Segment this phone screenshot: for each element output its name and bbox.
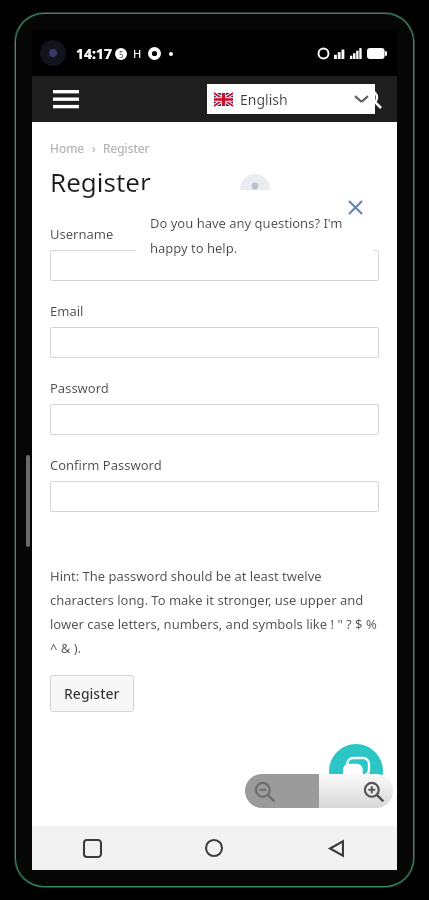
- button[interactable]: Open chat: [329, 744, 383, 798]
- staticText: Do you have any questions? I'm happy to …: [150, 214, 360, 257]
- staticText: H: [133, 46, 142, 61]
- button[interactable]: English: [207, 84, 375, 114]
- staticText: 14:17: [76, 44, 112, 63]
- staticText: Register: [50, 164, 151, 199]
- staticText: Email: [50, 302, 84, 320]
- button[interactable]: [50, 327, 379, 358]
- button[interactable]: [50, 481, 379, 512]
- staticText: Register: [64, 684, 120, 703]
- button[interactable]: Search: [353, 80, 391, 118]
- button[interactable]: [50, 404, 379, 435]
- staticText: ›: [92, 140, 96, 156]
- button[interactable]: Zoom in: [319, 774, 393, 808]
- staticText: Hint: The password should be at least tw…: [50, 567, 379, 657]
- staticText: Register: [103, 140, 150, 156]
- button[interactable]: Recents: [32, 826, 153, 870]
- staticText: Username: [50, 225, 114, 243]
- staticText: Password: [50, 379, 109, 397]
- staticText: Confirm Password: [50, 456, 162, 474]
- staticText: English: [240, 90, 288, 109]
- button[interactable]: Home: [50, 140, 85, 156]
- staticText: 5: [119, 49, 124, 60]
- button[interactable]: Menu: [46, 79, 86, 119]
- button[interactable]: [50, 250, 379, 281]
- button[interactable]: Close: [342, 194, 368, 220]
- button[interactable]: Register: [50, 675, 134, 712]
- button[interactable]: Home: [153, 826, 275, 870]
- button[interactable]: Back: [275, 826, 397, 870]
- button[interactable]: Zoom out: [245, 774, 319, 808]
